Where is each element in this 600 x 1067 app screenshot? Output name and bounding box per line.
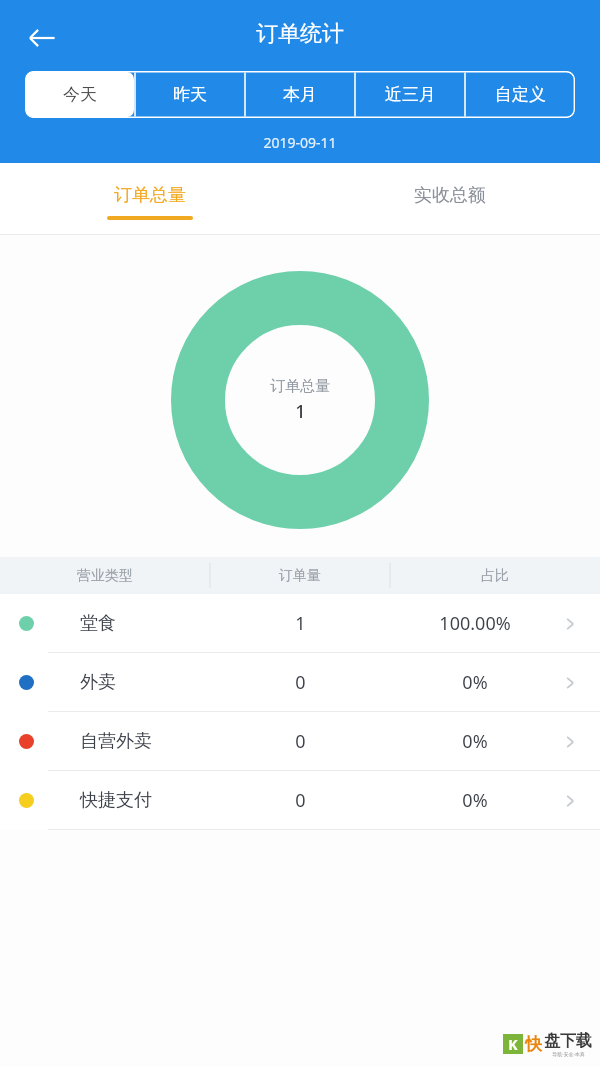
staticText: 外卖: [80, 671, 116, 694]
staticText: 导航·安全·本真: [552, 1051, 585, 1057]
staticText: 近三月: [385, 84, 436, 105]
staticText: 0: [295, 670, 306, 695]
staticText: 2019-09-11: [263, 133, 337, 152]
staticText: 堂食: [80, 612, 116, 635]
staticText: 1: [295, 399, 306, 424]
staticText: 快捷支付: [80, 789, 152, 812]
staticText: 0%: [462, 788, 488, 813]
staticText: 昨天: [173, 84, 207, 105]
button[interactable]: 今天: [26, 72, 134, 117]
staticText: 订单总量: [270, 377, 330, 396]
staticText: 自营外卖: [80, 730, 152, 753]
button[interactable]: 自营外卖: [0, 712, 600, 771]
button[interactable]: 本月: [245, 71, 355, 118]
button[interactable]: 实收总额: [300, 163, 600, 235]
staticText: 营业类型: [77, 567, 133, 585]
staticText: 今天: [63, 84, 97, 105]
button[interactable]: 昨天: [135, 71, 245, 118]
staticText: 自定义: [495, 84, 546, 105]
staticText: 0: [295, 729, 306, 754]
button[interactable]: 快捷支付: [0, 771, 600, 830]
staticText: 占比: [481, 567, 509, 585]
staticText: K: [508, 1035, 518, 1054]
button[interactable]: 近三月: [355, 71, 465, 118]
button[interactable]: 自定义: [465, 71, 575, 118]
staticText: 0%: [462, 670, 488, 695]
button[interactable]: 外卖: [0, 653, 600, 712]
button[interactable]: 订单总量: [0, 163, 300, 235]
staticText: 100.00%: [439, 611, 511, 636]
staticText: 订单总量: [114, 184, 186, 207]
staticText: 订单量: [279, 567, 321, 585]
staticText: 实收总额: [414, 184, 486, 207]
staticText: 0%: [462, 729, 488, 754]
staticText: 0: [295, 788, 306, 813]
staticText: 1: [295, 611, 306, 636]
staticText: 快: [525, 1034, 542, 1055]
staticText: 订单统计: [256, 20, 344, 48]
button[interactable]: 堂食: [0, 594, 600, 653]
staticText: 本月: [283, 84, 317, 105]
staticText: 盘下载: [544, 1031, 592, 1051]
button[interactable]: Back: [14, 10, 70, 66]
